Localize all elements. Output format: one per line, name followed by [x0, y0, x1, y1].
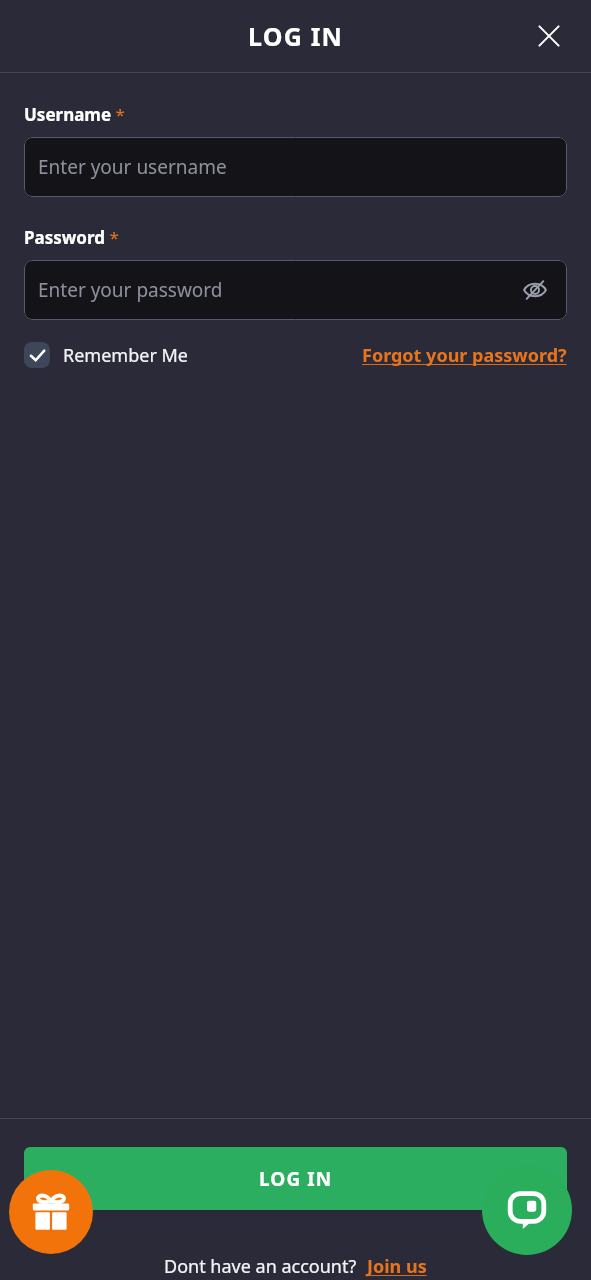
staticText: Enter your username — [38, 154, 227, 180]
staticText: Password * — [24, 226, 119, 249]
button[interactable]: Forgot your password? — [362, 343, 567, 368]
button[interactable]: LOG IN — [24, 1147, 567, 1210]
button[interactable]: Rewards — [9, 1170, 93, 1254]
button[interactable]: Join us — [367, 1254, 427, 1279]
staticText: Username * — [24, 103, 125, 126]
staticText: Enter your password — [38, 277, 223, 303]
staticText: Dont have an account? — [164, 1254, 357, 1279]
button[interactable]: Enter your username — [24, 137, 567, 197]
staticText: Forgot your password? — [362, 343, 567, 368]
button[interactable]: Close — [527, 14, 571, 58]
button[interactable]: Enter your password — [24, 260, 567, 320]
button[interactable]: Remember Me — [24, 342, 188, 368]
staticText: Join us — [367, 1254, 427, 1279]
staticText: Remember Me — [63, 343, 188, 368]
staticText: LOG IN — [248, 19, 344, 53]
button[interactable]: Live chat — [482, 1165, 572, 1255]
button[interactable]: Show password — [519, 274, 551, 306]
staticText: LOG IN — [259, 1166, 333, 1192]
